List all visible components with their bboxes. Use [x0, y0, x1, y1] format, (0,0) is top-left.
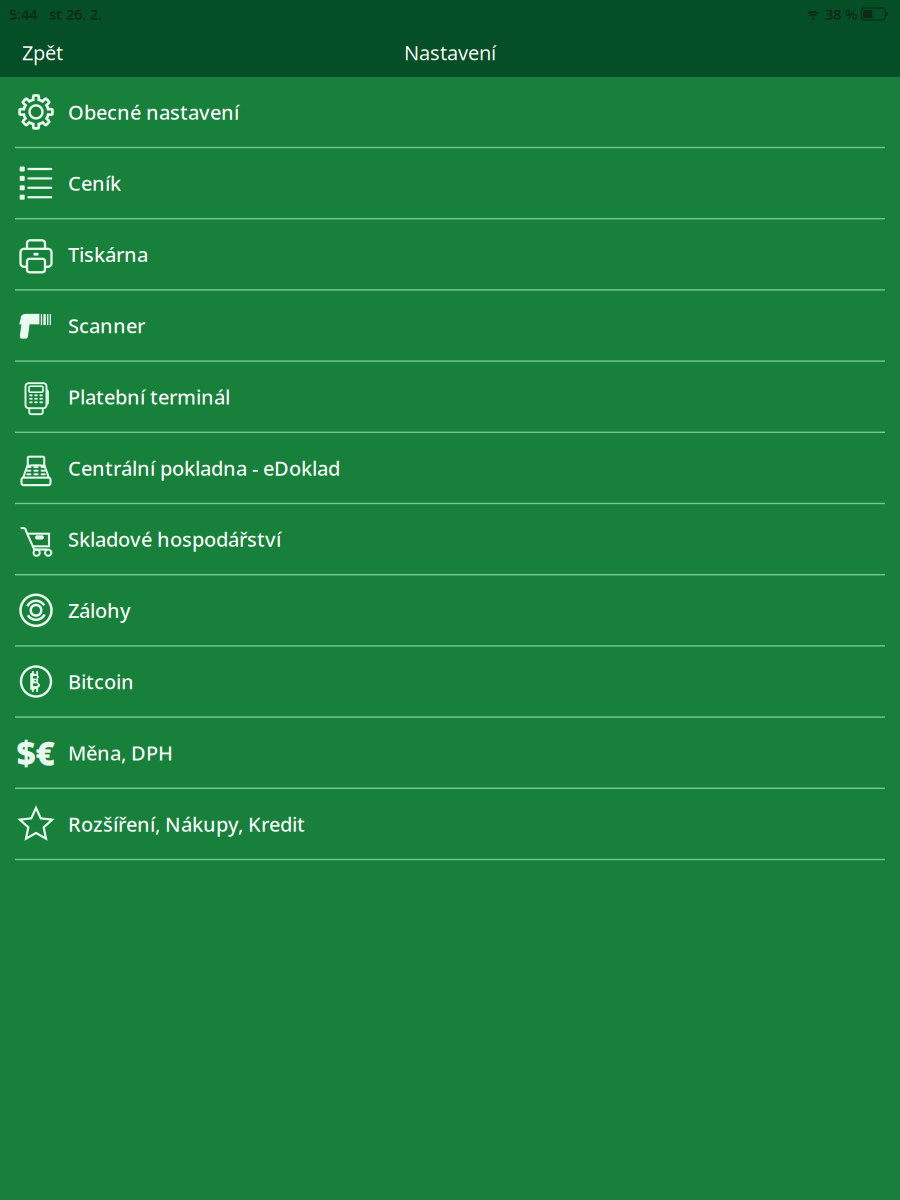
staticText: Zpět: [22, 39, 63, 66]
button[interactable]: Rozšíření, Nákupy, Kredit: [0, 789, 900, 860]
staticText: Centrální pokladna - eDoklad: [68, 455, 340, 481]
staticText: Rozšíření, Nákupy, Kredit: [68, 811, 305, 837]
button[interactable]: Zpět: [8, 31, 77, 74]
staticText: Skladové hospodářství: [68, 526, 281, 552]
staticText: Bitcoin: [68, 668, 134, 695]
staticText: Nastavení: [404, 39, 496, 66]
button[interactable]: Bitcoin: [0, 647, 900, 718]
staticText: 5:44 st 26. 2.: [9, 4, 102, 24]
button[interactable]: Tiskárna: [0, 219, 900, 291]
button[interactable]: $€: [0, 718, 900, 789]
button[interactable]: Obecné nastavení: [0, 77, 900, 148]
staticText: Platební terminál: [68, 383, 230, 410]
button[interactable]: Zálohy: [0, 575, 900, 647]
button[interactable]: Scanner: [0, 291, 900, 362]
button[interactable]: Platební terminál: [0, 362, 900, 433]
staticText: 38 %: [825, 4, 858, 24]
button[interactable]: Ceník: [0, 148, 900, 219]
staticText: Scanner: [68, 312, 145, 339]
button[interactable]: Skladové hospodářství: [0, 504, 900, 575]
staticText: Zálohy: [68, 597, 131, 624]
staticText: Tiskárna: [68, 241, 148, 268]
staticText: Obecné nastavení: [68, 99, 239, 125]
staticText: $€: [16, 731, 55, 775]
button[interactable]: Centrální pokladna - eDoklad: [0, 433, 900, 504]
staticText: Měna, DPH: [68, 739, 173, 766]
staticText: Ceník: [68, 170, 121, 196]
